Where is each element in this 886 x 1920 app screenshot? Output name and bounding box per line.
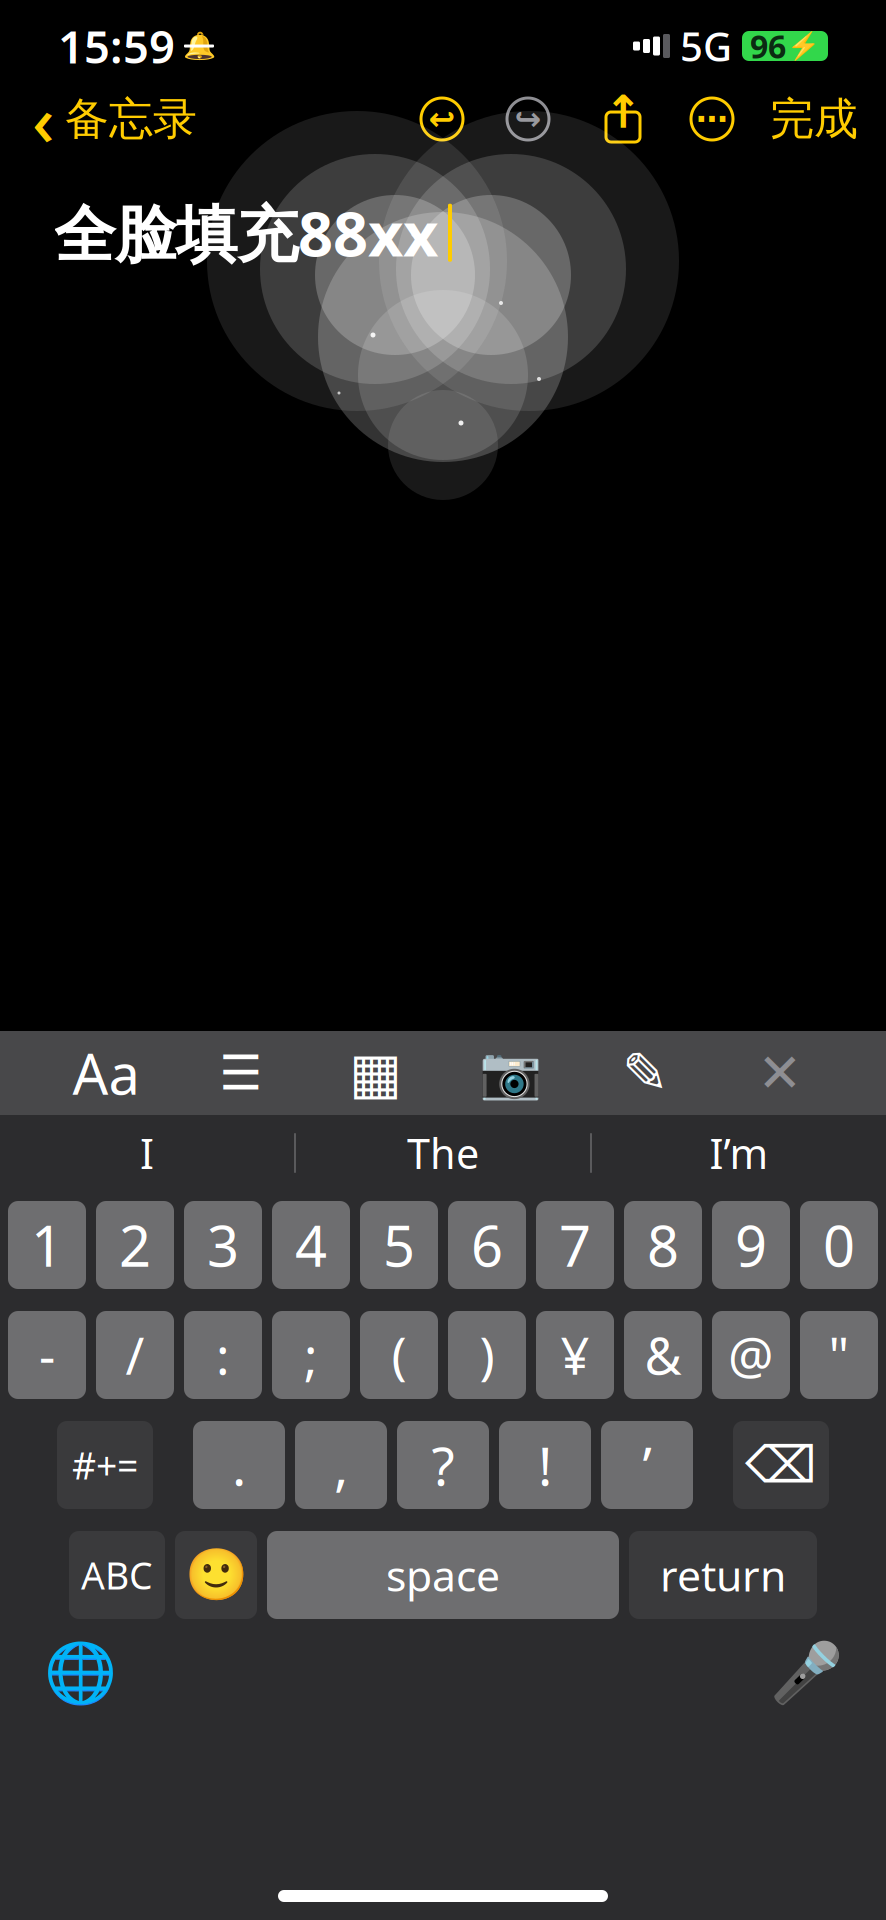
button[interactable]: Checklist bbox=[193, 1031, 289, 1115]
staticText: 🎤 bbox=[769, 1639, 842, 1706]
staticText: : bbox=[216, 1321, 230, 1389]
staticText: 1 bbox=[31, 1208, 63, 1282]
staticText: 9 bbox=[735, 1208, 767, 1282]
staticText: ☰ bbox=[219, 1046, 262, 1100]
staticText: ? bbox=[431, 1430, 454, 1500]
staticText: / bbox=[125, 1321, 144, 1389]
staticText: 📷 bbox=[479, 1044, 542, 1102]
staticText: return bbox=[660, 1547, 786, 1603]
button[interactable]: 9 bbox=[712, 1201, 790, 1289]
button[interactable]: return bbox=[629, 1531, 817, 1619]
button[interactable]: I bbox=[0, 1115, 294, 1191]
button[interactable]: 6 bbox=[448, 1201, 526, 1289]
button[interactable]: ¥ bbox=[536, 1311, 614, 1399]
button[interactable]: ! bbox=[499, 1421, 591, 1509]
button[interactable]: Share bbox=[598, 92, 648, 146]
button[interactable]: ABC bbox=[69, 1531, 165, 1619]
button[interactable]: Redo bbox=[504, 95, 552, 143]
staticText: I’m bbox=[709, 1126, 768, 1180]
button[interactable]: @ bbox=[712, 1311, 790, 1399]
staticText: 3 bbox=[207, 1208, 239, 1282]
staticText: ↩ bbox=[428, 101, 455, 137]
staticText: 8 bbox=[647, 1208, 679, 1282]
button[interactable]: 8 bbox=[624, 1201, 702, 1289]
staticText: ‹ bbox=[32, 73, 55, 165]
button[interactable]: space bbox=[267, 1531, 619, 1619]
button[interactable]: , bbox=[295, 1421, 387, 1509]
staticText: ⚡ bbox=[787, 31, 820, 61]
staticText: 4 bbox=[295, 1208, 327, 1282]
button[interactable]: Markup bbox=[597, 1031, 693, 1115]
button[interactable]: ? bbox=[397, 1421, 489, 1509]
staticText: & bbox=[644, 1321, 681, 1389]
staticText: @ bbox=[728, 1321, 774, 1389]
button[interactable]: Switch keyboard bbox=[40, 1633, 120, 1713]
button[interactable]: ( bbox=[360, 1311, 438, 1399]
staticText: ; bbox=[304, 1321, 318, 1389]
staticText: 备忘录 bbox=[65, 92, 197, 146]
staticText: 🌐 bbox=[43, 1639, 116, 1706]
button[interactable]: Format bbox=[58, 1031, 154, 1115]
staticText: ’ bbox=[642, 1430, 651, 1500]
staticText: 0 bbox=[823, 1208, 855, 1282]
button[interactable]: 1 bbox=[8, 1201, 86, 1289]
button[interactable]: I’m bbox=[592, 1115, 886, 1191]
staticText: 🔔 bbox=[182, 31, 215, 61]
staticText: ✎ bbox=[622, 1041, 669, 1105]
staticText: #+= bbox=[72, 1440, 138, 1490]
staticText: . bbox=[232, 1430, 246, 1500]
staticText: , bbox=[334, 1430, 348, 1500]
staticText: 2 bbox=[119, 1208, 151, 1282]
staticText: ▦ bbox=[349, 1041, 402, 1105]
staticText: ¥ bbox=[560, 1321, 589, 1389]
staticText: 完成 bbox=[770, 92, 858, 146]
staticText: 5 bbox=[383, 1208, 415, 1282]
button[interactable]: ‹ bbox=[28, 91, 201, 147]
staticText: 5G bbox=[680, 19, 732, 72]
button[interactable]: Table bbox=[328, 1031, 424, 1115]
button[interactable]: ) bbox=[448, 1311, 526, 1399]
button[interactable]: More bbox=[688, 95, 736, 143]
staticText: ! bbox=[538, 1430, 552, 1500]
button[interactable]: " bbox=[800, 1311, 878, 1399]
staticText: ) bbox=[479, 1321, 494, 1389]
staticText: 6 bbox=[471, 1208, 503, 1282]
staticText: ✕ bbox=[757, 1043, 802, 1103]
button[interactable]: Undo bbox=[418, 95, 466, 143]
staticText: Aa bbox=[72, 1036, 139, 1110]
staticText: ↪ bbox=[514, 101, 541, 137]
button[interactable]: & bbox=[624, 1311, 702, 1399]
button[interactable]: Camera bbox=[462, 1031, 558, 1115]
button[interactable]: Dictate bbox=[766, 1633, 846, 1713]
button[interactable]: 3 bbox=[184, 1201, 262, 1289]
staticText: 全脸填充88xx bbox=[54, 192, 438, 273]
button[interactable]: Close bbox=[732, 1031, 828, 1115]
staticText: ( bbox=[391, 1321, 406, 1389]
staticText: " bbox=[828, 1321, 849, 1389]
staticText: space bbox=[386, 1547, 500, 1603]
button[interactable]: 4 bbox=[272, 1201, 350, 1289]
button[interactable]: 完成 bbox=[770, 91, 858, 147]
staticText: ABC bbox=[81, 1550, 153, 1600]
button[interactable]: . bbox=[193, 1421, 285, 1509]
button[interactable]: - bbox=[8, 1311, 86, 1399]
button[interactable]: Delete bbox=[733, 1421, 829, 1509]
staticText: ⌫ bbox=[745, 1436, 817, 1494]
button[interactable]: 5 bbox=[360, 1201, 438, 1289]
button[interactable]: 2 bbox=[96, 1201, 174, 1289]
button[interactable]: : bbox=[184, 1311, 262, 1399]
button[interactable]: #+= bbox=[57, 1421, 153, 1509]
button[interactable]: Emoji bbox=[175, 1531, 257, 1619]
staticText: The bbox=[407, 1126, 479, 1180]
staticText: - bbox=[39, 1321, 55, 1389]
button[interactable]: / bbox=[96, 1311, 174, 1399]
staticText: ↑ bbox=[604, 86, 642, 138]
staticText: ⋯ bbox=[696, 101, 728, 137]
button[interactable]: 0 bbox=[800, 1201, 878, 1289]
button[interactable]: ; bbox=[272, 1311, 350, 1399]
staticText: 7 bbox=[559, 1208, 591, 1282]
button[interactable]: 7 bbox=[536, 1201, 614, 1289]
button[interactable]: ’ bbox=[601, 1421, 693, 1509]
button[interactable]: The bbox=[296, 1115, 590, 1191]
staticText: 🙂 bbox=[184, 1546, 247, 1604]
